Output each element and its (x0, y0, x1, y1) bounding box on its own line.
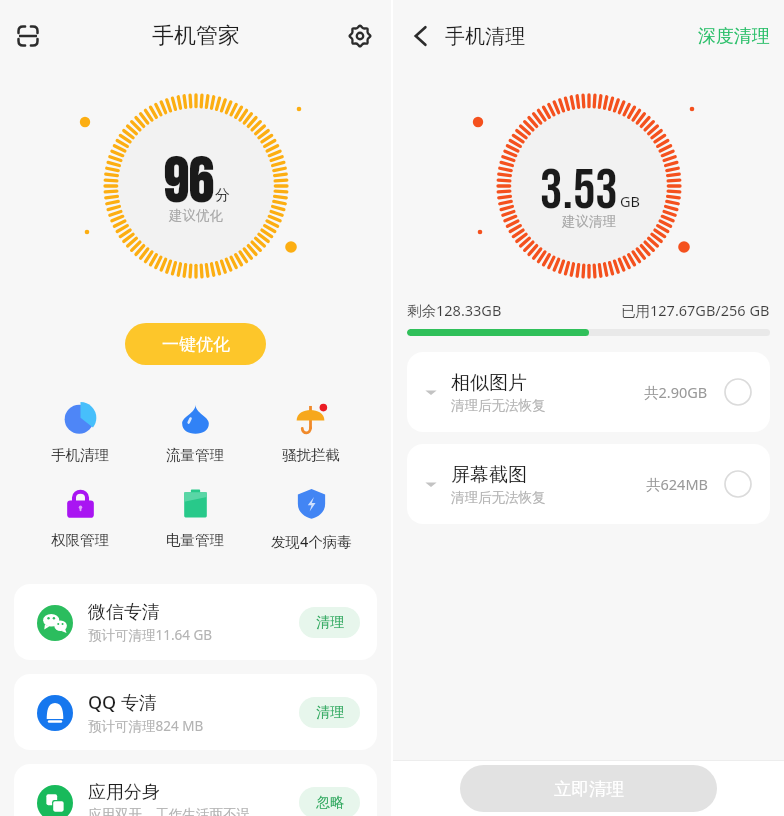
staticText: 发现4个病毒 (271, 531, 352, 551)
staticText: 剩余128.33GB (407, 300, 502, 320)
button[interactable]: 微信专清 (14, 584, 377, 660)
button[interactable]: 流量管理 (137, 398, 253, 464)
staticText: 96 (163, 146, 213, 220)
staticText: 清理 (316, 614, 344, 632)
staticText: 手机清理 (445, 24, 525, 49)
staticText: 屏幕截图 (451, 463, 527, 487)
button[interactable]: Scan (5, 13, 51, 59)
staticText: 应用双开，工作生活两不误 (88, 806, 250, 816)
other: Back (403, 18, 439, 54)
button[interactable]: 应用分身 (14, 764, 377, 816)
staticText: 手机管家 (152, 22, 240, 50)
staticText: 分 (215, 186, 230, 205)
staticText: 已用127.67GB/256 GB (621, 300, 770, 320)
button[interactable]: QQ 专清 (14, 674, 377, 750)
staticText: 骚扰拦截 (282, 446, 340, 464)
staticText: 权限管理 (51, 531, 109, 549)
button[interactable]: 立即清理 (460, 765, 717, 812)
button[interactable]: Back (403, 18, 525, 54)
staticText: 共2.90GB (644, 382, 708, 402)
button[interactable]: 一键优化 (125, 323, 266, 365)
staticText: 流量管理 (166, 446, 224, 464)
staticText: 相似图片 (451, 371, 527, 395)
staticText: 清理 (316, 704, 344, 722)
staticText: 忽略 (316, 794, 344, 812)
button[interactable]: 屏幕截图 (407, 444, 770, 524)
staticText: 建议清理 (562, 213, 616, 230)
button[interactable]: 相似图片 (407, 352, 770, 432)
button[interactable]: Select (724, 470, 752, 498)
button[interactable]: 骚扰拦截 (253, 398, 369, 464)
button[interactable]: 深度清理 (698, 25, 770, 48)
button[interactable]: 手机清理 (22, 398, 137, 464)
button[interactable]: 清理 (299, 697, 360, 728)
button[interactable]: Settings (337, 13, 383, 59)
staticText: 共624MB (646, 474, 708, 494)
staticText: 一键优化 (162, 334, 230, 355)
button[interactable]: 清理 (299, 607, 360, 638)
button[interactable]: 权限管理 (22, 483, 137, 549)
button[interactable]: 忽略 (299, 787, 360, 816)
staticText: 应用分身 (88, 781, 160, 804)
staticText: 深度清理 (698, 25, 770, 48)
button[interactable]: 发现4个病毒 (253, 483, 369, 551)
staticText: 预计可清理11.64 GB (88, 626, 213, 644)
staticText: QQ 专清 (88, 690, 157, 715)
staticText: 立即清理 (554, 778, 624, 800)
staticText: 手机清理 (51, 446, 109, 464)
staticText: 微信专清 (88, 601, 160, 624)
button[interactable]: Select (724, 378, 752, 406)
staticText: 预计可清理824 MB (88, 717, 204, 735)
staticText: 清理后无法恢复 (451, 397, 546, 414)
staticText: 电量管理 (166, 531, 224, 549)
staticText: 3.53 (540, 158, 618, 225)
staticText: 清理后无法恢复 (451, 489, 546, 506)
button[interactable]: 电量管理 (137, 483, 253, 549)
staticText: 建议优化 (169, 207, 223, 224)
staticText: GB (620, 191, 640, 211)
